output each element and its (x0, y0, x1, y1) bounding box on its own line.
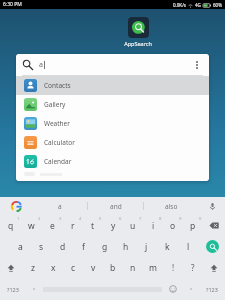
staticText: a (39, 60, 43, 70)
button[interactable]: Calculator (16, 133, 209, 152)
staticText: 5 (99, 216, 102, 222)
staticText: c (71, 262, 76, 274)
staticText: b (110, 262, 116, 274)
button[interactable]: s (31, 236, 52, 257)
staticText: ? (191, 262, 195, 273)
button[interactable]: z (22, 257, 43, 278)
button[interactable]: Weather (16, 114, 209, 133)
staticText: a (58, 202, 62, 211)
staticText: AppSearch (124, 40, 152, 47)
staticText: h (123, 241, 129, 253)
button[interactable]: Voice input (199, 197, 225, 215)
staticText: 4 (79, 216, 82, 222)
staticText: p (190, 220, 196, 232)
staticText: 1 (17, 216, 20, 222)
staticText: Weather (44, 119, 70, 128)
staticText: q (8, 220, 14, 232)
button[interactable]: y (103, 215, 123, 236)
button[interactable]: f (73, 236, 94, 257)
staticText: f (82, 241, 85, 253)
button[interactable]: j (136, 236, 157, 257)
staticText: a (18, 241, 23, 253)
button[interactable]: ?123 (199, 278, 225, 300)
button[interactable]: t (83, 215, 103, 236)
button[interactable]: m (143, 257, 163, 278)
button[interactable]: Backspace (203, 215, 225, 236)
button[interactable]: p (183, 215, 203, 236)
staticText: 0 (199, 216, 202, 222)
staticText: d (60, 241, 66, 253)
button[interactable]: x (43, 257, 63, 278)
button[interactable]: c (63, 257, 83, 278)
staticText: 7 (139, 216, 142, 222)
button[interactable]: r (63, 215, 83, 236)
button[interactable]: d (52, 236, 73, 257)
button[interactable]: Shift (0, 257, 22, 278)
staticText: ! (172, 262, 175, 273)
button[interactable]: a (32, 197, 87, 215)
staticText: y (111, 220, 116, 232)
button[interactable]: w (21, 215, 42, 236)
staticText: Calculator (44, 138, 75, 147)
staticText: n (130, 262, 136, 274)
staticText: k (165, 241, 170, 253)
button[interactable]: Emoji (163, 278, 183, 300)
staticText: ?123 (7, 286, 19, 293)
button[interactable]: v (83, 257, 103, 278)
button[interactable]: e (42, 215, 63, 236)
button[interactable]: Search (199, 236, 225, 257)
button[interactable]: Google (0, 197, 32, 215)
button[interactable]: Contacts (16, 76, 209, 95)
button[interactable]: b (103, 257, 123, 278)
staticText: also (165, 202, 178, 211)
other: Search (22, 59, 33, 70)
staticText: e (50, 220, 55, 232)
staticText: o (170, 220, 176, 232)
staticText: 6:30 PM (3, 1, 22, 8)
button[interactable]: n (123, 257, 143, 278)
button[interactable]: Shift (203, 257, 225, 278)
staticText: Calendar (44, 157, 72, 166)
button[interactable]: More options (191, 59, 203, 71)
staticText: l (187, 241, 190, 253)
button[interactable]: u (123, 215, 143, 236)
staticText: x (51, 262, 56, 274)
button[interactable]: ?123 (0, 278, 26, 300)
button[interactable]: Period (183, 278, 199, 300)
button[interactable]: and (88, 197, 143, 215)
button[interactable]: h (115, 236, 136, 257)
staticText: and (110, 202, 122, 211)
button[interactable]: Comma (26, 278, 42, 300)
button[interactable]: ! (163, 257, 183, 278)
button[interactable]: l (178, 236, 199, 257)
staticText: 6 (119, 216, 122, 222)
staticText: Contacts (44, 81, 71, 90)
button[interactable]: Search (16, 54, 209, 75)
button[interactable]: g (94, 236, 115, 257)
button[interactable]: i (143, 215, 163, 236)
button[interactable]: ? (183, 257, 203, 278)
staticText: Gallery (44, 100, 66, 109)
staticText: 8 (159, 216, 162, 222)
button[interactable]: Gallery (16, 95, 209, 114)
staticText: r (71, 220, 75, 232)
button[interactable]: a (9, 236, 31, 257)
staticText: g (102, 241, 108, 253)
button[interactable]: Calendar (16, 152, 209, 171)
button[interactable]: AppSearch (120, 16, 156, 48)
button[interactable]: k (157, 236, 178, 257)
button[interactable]: o (163, 215, 183, 236)
staticText: i (152, 220, 155, 232)
staticText: 0.0K/s (173, 2, 186, 8)
staticText: 2 (38, 216, 41, 222)
staticText: 4G (195, 2, 201, 8)
button[interactable]: also (144, 197, 199, 215)
staticText: t (91, 220, 95, 232)
button[interactable]: q (0, 215, 21, 236)
staticText: ?123 (206, 286, 218, 293)
staticText: j (145, 241, 148, 253)
staticText: w (28, 220, 35, 232)
button[interactable]: Space (42, 278, 163, 300)
staticText: v (91, 262, 96, 274)
staticText: m (149, 262, 157, 274)
